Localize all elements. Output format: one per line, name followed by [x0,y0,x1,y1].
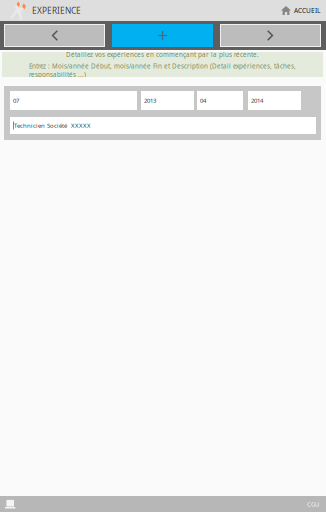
button[interactable]: Ajouter [112,24,213,47]
staticText: 2013 [144,96,156,105]
button[interactable]: Suivant [220,24,321,47]
staticText: Détaillez vos expériences en commençant … [66,50,259,59]
staticText: Entrez : Mois/année Début, mois/année Fi… [29,62,296,79]
button[interactable]: CGU [307,496,326,512]
staticText: EXPERIENCE [32,5,81,16]
staticText: CGU [307,500,319,508]
staticText: ACCUEIL [294,6,320,15]
staticText: 07 [13,96,19,105]
button[interactable]: Précédent [4,24,105,47]
button[interactable]: ACCUEIL [281,0,326,21]
staticText: Technicien Société XXXXX [14,121,91,130]
staticText: 04 [200,96,206,105]
button[interactable]: Version bureau [0,496,15,512]
staticText: 2014 [251,96,263,105]
